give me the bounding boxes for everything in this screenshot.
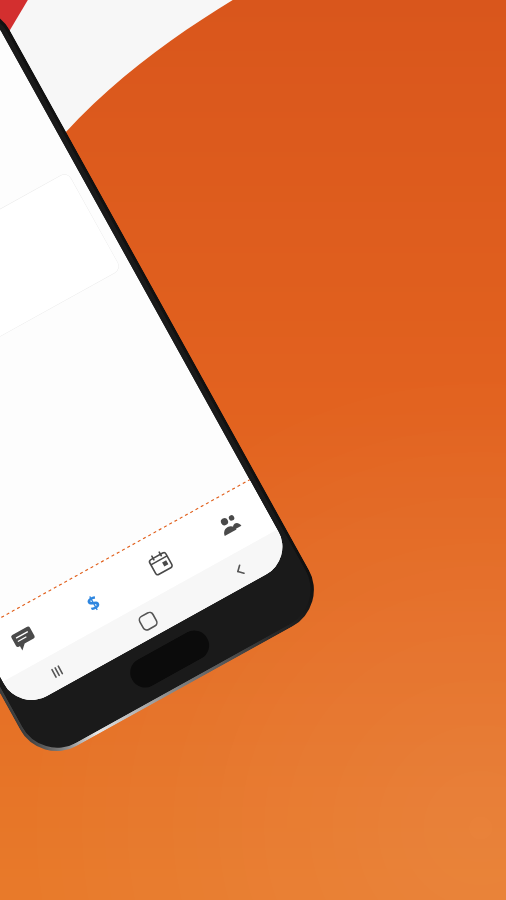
button[interactable]: Recents — [3, 631, 110, 711]
button[interactable]: Back — [186, 529, 294, 610]
button[interactable]: Messages — [0, 595, 71, 682]
button[interactable]: A — [0, 171, 122, 412]
button[interactable]: Contacts — [181, 481, 277, 568]
button[interactable]: Calendar — [112, 519, 208, 606]
button[interactable]: Deals — [44, 557, 139, 644]
button[interactable]: Home — [125, 625, 215, 693]
button[interactable]: Home — [94, 580, 202, 661]
staticText: $ — [82, 589, 102, 613]
